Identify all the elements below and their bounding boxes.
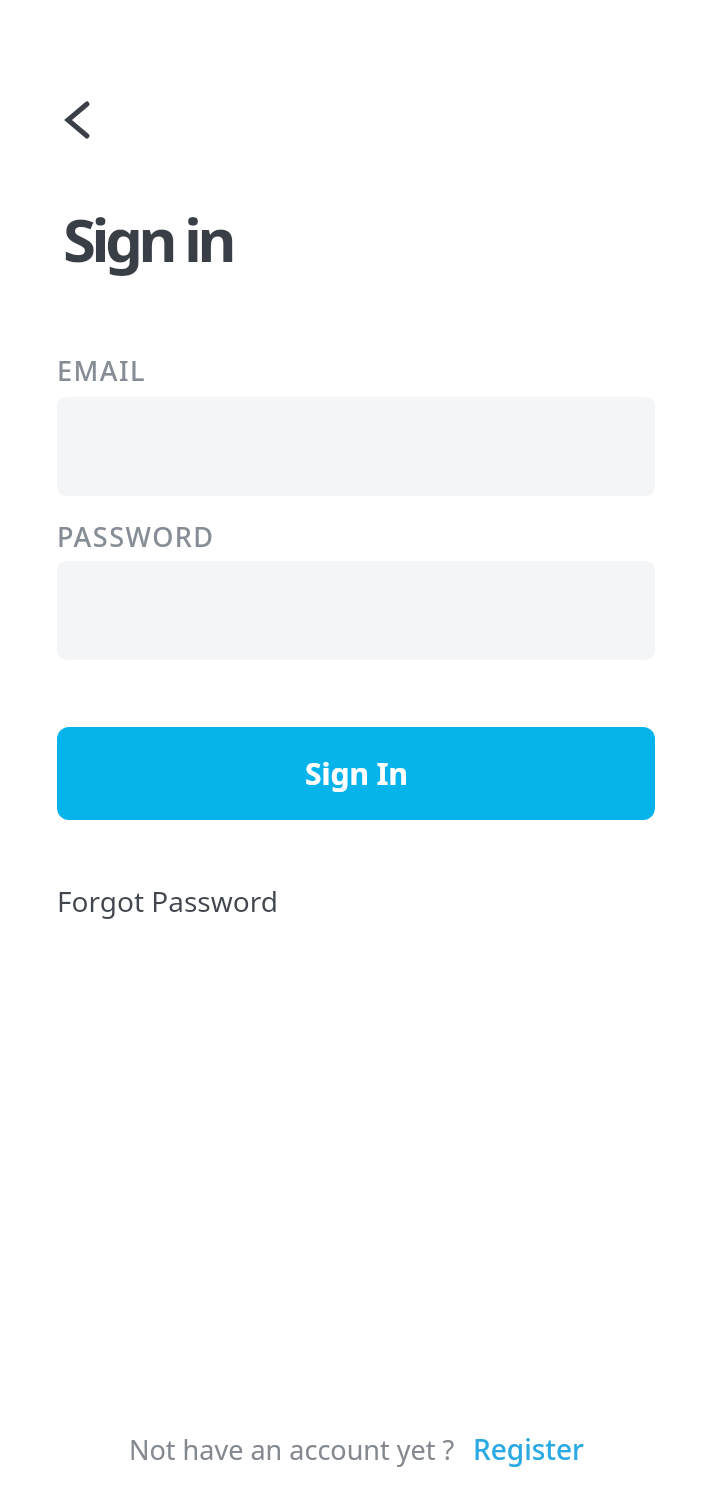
staticText: Sign in bbox=[63, 198, 232, 280]
staticText: EMAIL bbox=[57, 352, 146, 389]
button[interactable]: Sign In bbox=[57, 727, 655, 820]
button[interactable] bbox=[53, 96, 101, 144]
button[interactable]: Register bbox=[473, 1430, 584, 1468]
button[interactable]: Forgot Password bbox=[57, 882, 278, 920]
staticText: Not have an account yet ? bbox=[129, 1431, 455, 1468]
staticText: PASSWORD bbox=[57, 518, 215, 555]
staticText: Sign In bbox=[305, 753, 408, 794]
